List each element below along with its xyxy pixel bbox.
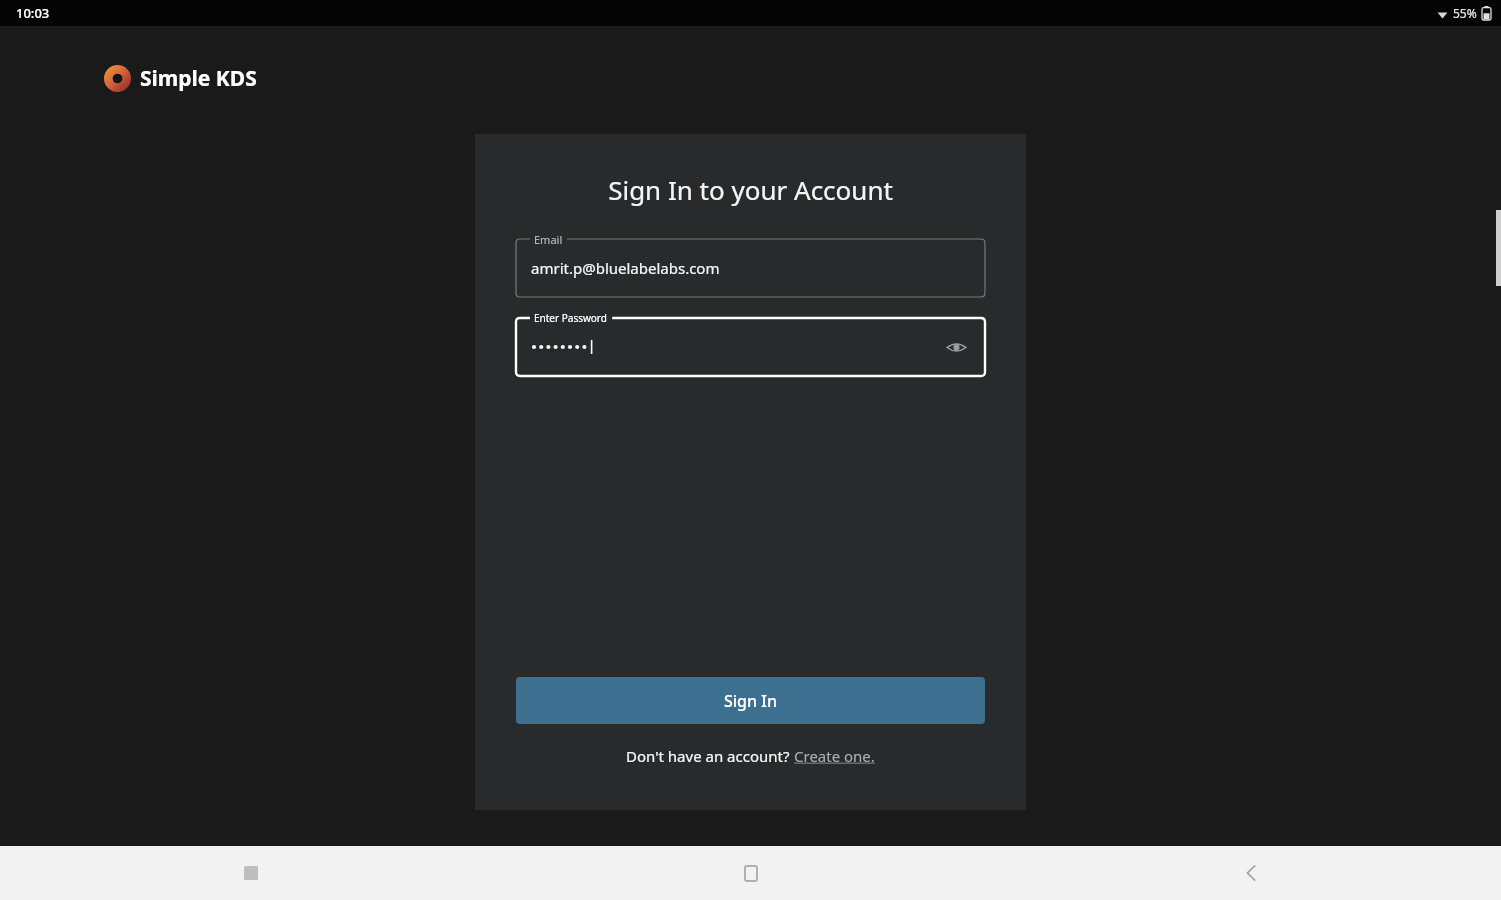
staticText: Don't have an account? <box>626 746 794 766</box>
button[interactable]: Enter Password <box>516 318 985 376</box>
staticText: Sign In to your Account <box>608 172 893 207</box>
button[interactable]: Sign In <box>516 677 985 724</box>
staticText: 10:03 <box>16 4 50 22</box>
staticText: Create one. <box>794 746 875 766</box>
button[interactable]: Email <box>516 239 985 297</box>
staticText: Enter Password <box>534 311 607 325</box>
button[interactable]: Create one. <box>794 746 875 766</box>
staticText: Sign In <box>724 690 777 712</box>
staticText: 55% <box>1453 5 1477 21</box>
staticText: Simple KDS <box>140 64 257 93</box>
staticText: Email <box>534 232 563 247</box>
button[interactable]: Recent apps <box>0 846 501 900</box>
button[interactable]: Show password <box>941 332 971 362</box>
staticText: amrit.p@bluelabelabs.com <box>531 258 720 278</box>
button[interactable]: Home <box>501 846 1001 900</box>
